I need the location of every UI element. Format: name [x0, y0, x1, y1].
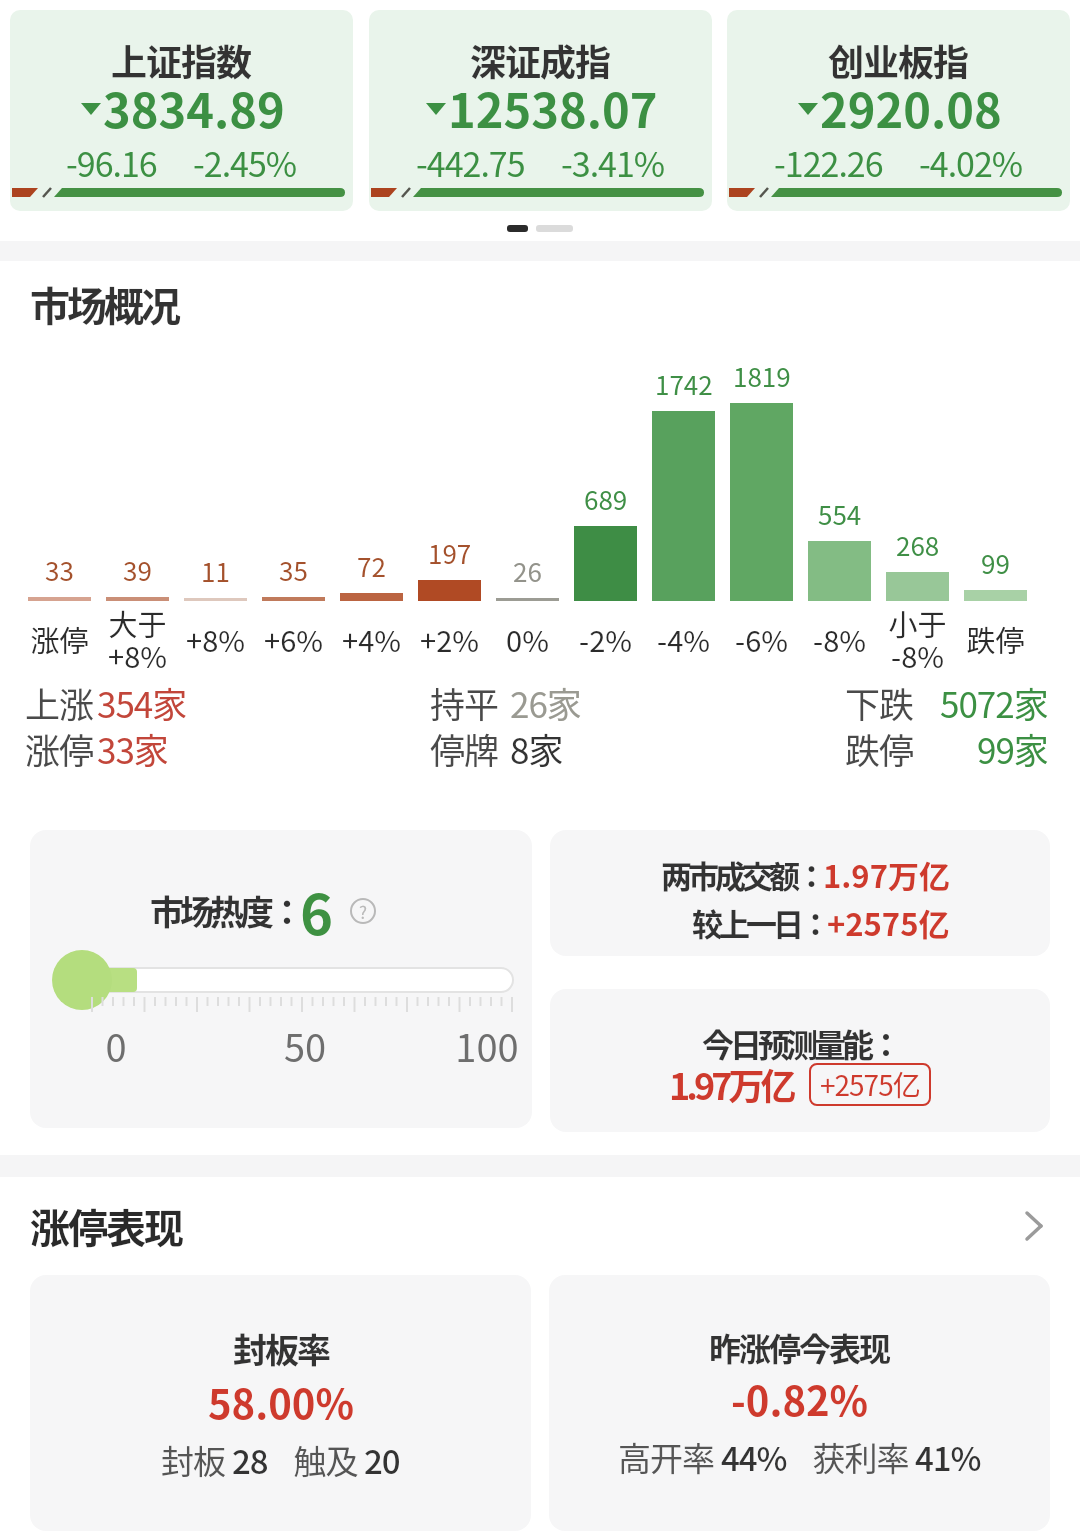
staticText: -6%	[735, 618, 788, 660]
staticText: -96.16	[66, 138, 157, 187]
staticText: 持平	[430, 677, 499, 723]
staticText: 26	[513, 552, 542, 590]
staticText: -3.41%	[561, 138, 665, 187]
staticText: 小于 -8%	[888, 602, 947, 677]
button[interactable]: 上证指数	[10, 10, 353, 211]
staticText: 5072家	[940, 677, 1048, 723]
staticText: 554	[818, 495, 862, 533]
staticText: -4.02%	[919, 138, 1023, 187]
staticText: 268	[896, 526, 940, 564]
staticText: 跌停	[845, 723, 914, 769]
staticText: -122.26	[774, 138, 883, 187]
staticText: +2575亿	[827, 900, 950, 945]
staticText: 跌停	[966, 618, 1025, 660]
staticText: 上证指数	[111, 34, 252, 86]
staticText: 33	[45, 551, 74, 589]
staticText: 100	[452, 1018, 522, 1073]
staticText: 39	[123, 551, 152, 589]
button[interactable]: 今日预测量能：	[550, 989, 1050, 1132]
button[interactable]: 市场热度：	[30, 830, 532, 1128]
staticText: 大于 +8%	[108, 602, 167, 677]
staticText: -0.82%	[731, 1370, 869, 1428]
staticText: 1819	[733, 357, 791, 395]
staticText: 下跌	[845, 677, 914, 723]
staticText: 99	[981, 544, 1010, 582]
staticText: 涨停表现	[30, 1197, 182, 1255]
staticText: 获利率	[787, 1433, 915, 1481]
staticText: 28	[232, 1436, 268, 1484]
staticText: 高开率	[618, 1433, 721, 1481]
staticText: 50	[280, 1018, 330, 1073]
staticText: 44%	[721, 1433, 787, 1481]
staticText: -2.45%	[193, 138, 297, 187]
staticText: +8%	[186, 618, 245, 660]
staticText: -442.75	[416, 138, 525, 187]
staticText: 2920.08	[820, 73, 1002, 141]
staticText: 197	[428, 534, 472, 572]
staticText: 35	[279, 551, 308, 589]
staticText: 1.97万亿	[823, 852, 950, 897]
staticText: 3834.89	[103, 73, 285, 141]
staticText: 涨停	[30, 618, 89, 660]
staticText: 72	[357, 547, 386, 585]
staticText: 1.97万亿	[669, 1058, 793, 1110]
staticText: 1742	[655, 365, 713, 403]
staticText: 深证成指	[470, 34, 611, 86]
staticText: 0	[96, 1018, 136, 1073]
staticText: -2%	[579, 618, 632, 660]
staticText: 两市成交额：	[661, 852, 823, 897]
staticText: +2575亿	[820, 1064, 920, 1105]
staticText: 上涨	[25, 677, 94, 723]
staticText: 26家	[510, 677, 581, 723]
staticText: 99家	[977, 723, 1048, 769]
staticText: 涨停	[25, 723, 94, 769]
button[interactable]: 昨涨停今表现	[549, 1275, 1050, 1531]
staticText: 创业板指	[828, 34, 969, 86]
staticText: 8家	[510, 723, 563, 769]
staticText: +4%	[342, 618, 401, 660]
staticText: 封板	[161, 1436, 232, 1484]
staticText: 33家	[97, 723, 168, 769]
staticText: 封板率	[233, 1324, 329, 1373]
staticText: 昨涨停今表现	[709, 1324, 890, 1370]
staticText: 689	[584, 480, 628, 518]
staticText: 41%	[915, 1433, 981, 1481]
staticText: 触及	[268, 1436, 364, 1484]
staticText: 市场概况	[30, 275, 178, 333]
staticText: 今日预测量能：	[702, 1020, 899, 1066]
staticText: 6	[300, 870, 334, 951]
staticText: -8%	[813, 618, 866, 660]
staticText: 20	[364, 1436, 400, 1484]
staticText: 较上一日：	[692, 900, 827, 945]
staticText: 58.00%	[208, 1373, 354, 1431]
staticText: -4%	[657, 618, 710, 660]
staticText: 0%	[506, 618, 549, 660]
staticText: 12538.07	[448, 73, 658, 141]
button[interactable]: 涨停表现	[0, 1177, 1080, 1275]
staticText: 市场热度：	[150, 886, 300, 935]
staticText: +2%	[420, 618, 479, 660]
button[interactable]: 创业板指	[727, 10, 1070, 211]
staticText: 354家	[97, 677, 187, 723]
button[interactable]: 两市成交额：	[550, 830, 1050, 956]
button[interactable]: 深证成指	[369, 10, 712, 211]
staticText: +6%	[264, 618, 323, 660]
button[interactable]: 封板率	[30, 1275, 531, 1531]
staticText: ?	[359, 899, 368, 924]
staticText: 停牌	[430, 723, 499, 769]
staticText: 11	[201, 552, 230, 590]
